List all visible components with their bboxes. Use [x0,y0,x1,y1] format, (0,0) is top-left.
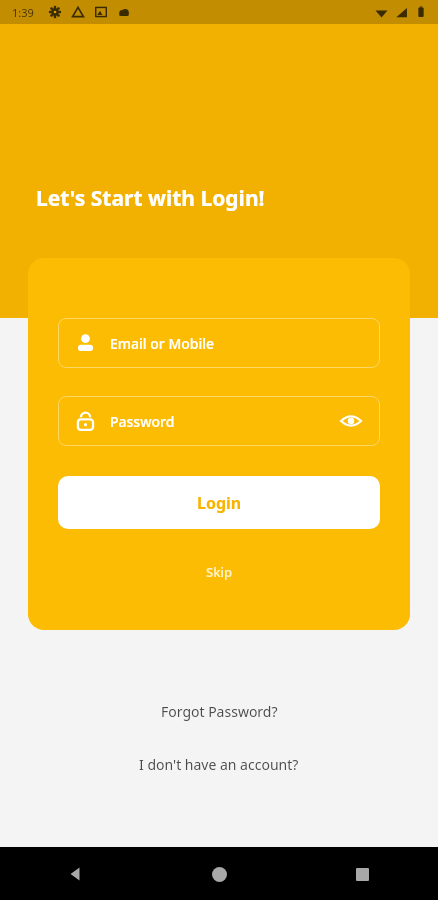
staticText: Skip [206,563,232,581]
button[interactable]: Home [199,854,239,894]
button[interactable]: I don't have an account? [0,743,438,785]
staticText: I don't have an account? [139,755,299,774]
staticText: Let's Start with Login! [36,184,265,213]
staticText: Forgot Password? [161,702,278,721]
button[interactable]: Recent apps [342,854,382,894]
staticText: Login [197,492,242,514]
staticText: Password [110,412,175,431]
staticText: 1:39 [12,5,34,20]
button[interactable]: Password [58,396,380,446]
button[interactable]: Show password [338,408,364,434]
button[interactable]: Back [56,854,96,894]
button[interactable]: Forgot Password? [0,690,438,732]
button[interactable]: Skip [28,555,410,589]
staticText: Email or Mobile [110,334,215,353]
button[interactable]: Login [58,476,380,529]
button[interactable]: Email or Mobile [58,318,380,368]
